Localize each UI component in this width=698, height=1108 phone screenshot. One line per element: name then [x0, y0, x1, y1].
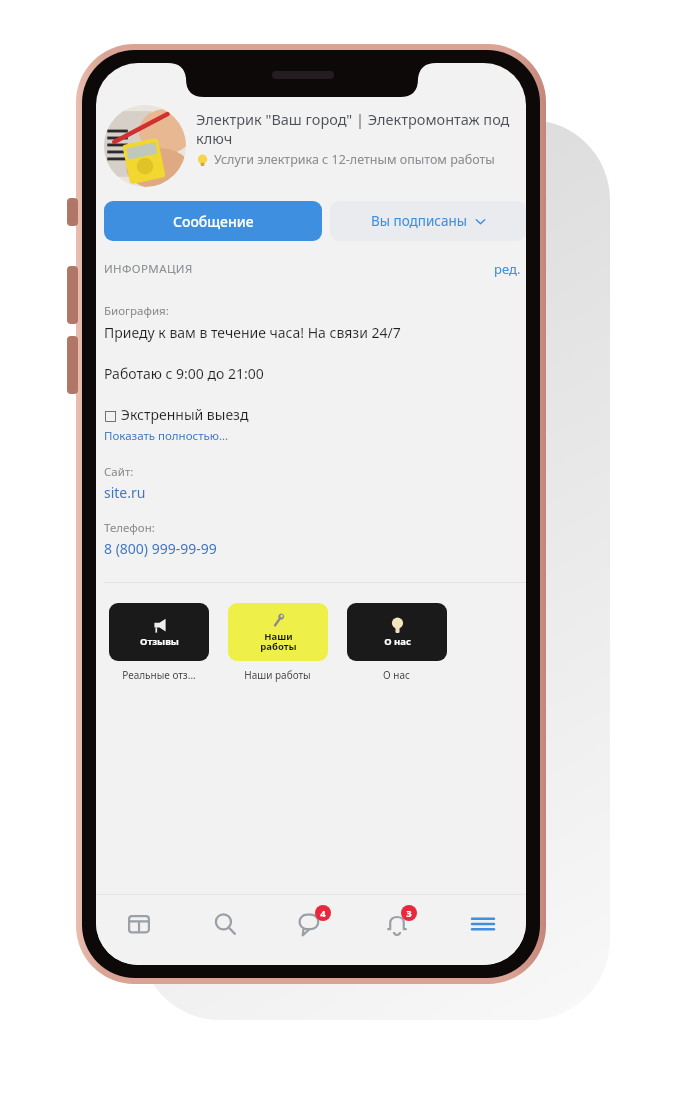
- staticText: site.ru: [104, 483, 146, 502]
- staticText: Телефон:: [104, 520, 155, 536]
- button[interactable]: Search: [182, 895, 268, 953]
- staticText: 3: [406, 907, 412, 920]
- button[interactable]: ред.: [491, 257, 524, 281]
- staticText: Отзывы: [140, 635, 179, 648]
- staticText: Вы подписаны: [371, 212, 468, 230]
- staticText: 8 (800) 999-99-99: [104, 539, 217, 558]
- button[interactable]: Notifications: [354, 895, 440, 953]
- button[interactable]: Наши работы: [225, 603, 330, 682]
- button[interactable]: site.ru: [104, 483, 146, 502]
- staticText: 4: [320, 907, 326, 920]
- staticText: Электрик "Ваш город" | Электромонтаж под…: [196, 109, 522, 148]
- staticText: Биография:: [104, 303, 169, 319]
- button[interactable]: Lists: [96, 895, 182, 953]
- button[interactable]: Отзывы: [106, 603, 211, 682]
- staticText: Наши работы: [244, 668, 311, 682]
- staticText: ред.: [494, 260, 521, 278]
- staticText: Показать полностью...: [104, 428, 229, 444]
- button[interactable]: Сообщение: [104, 201, 322, 241]
- button[interactable]: Показать полностью...: [104, 428, 229, 444]
- staticText: Сообщение: [173, 212, 254, 231]
- button[interactable]: 8 (800) 999-99-99: [104, 539, 217, 558]
- staticText: ИНФОРМАЦИЯ: [104, 261, 193, 277]
- button[interactable]: О нас: [344, 603, 449, 682]
- button[interactable]: Menu: [440, 895, 526, 953]
- button[interactable]: Messages: [268, 895, 354, 953]
- staticText: Приеду к вам в течение часа! На связи 24…: [104, 323, 401, 342]
- staticText: О нас: [384, 635, 411, 648]
- button[interactable]: Вы подписаны: [330, 201, 526, 241]
- staticText: Работаю с 9:00 до 21:00: [104, 364, 264, 383]
- staticText: Услуги электрика с 12-летным опытом рабо…: [214, 151, 495, 168]
- staticText: О нас: [383, 668, 410, 682]
- staticText: Сайт:: [104, 464, 134, 480]
- staticText: Реальные отз...: [122, 668, 196, 682]
- staticText: □ Экстренный выезд: [104, 405, 249, 424]
- staticText: Наши работы: [260, 630, 297, 653]
